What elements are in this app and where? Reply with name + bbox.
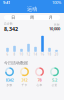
staticText: 目标 bbox=[54, 23, 60, 26]
staticText: 日 bbox=[11, 15, 15, 20]
button[interactable]: 8342 bbox=[2, 67, 17, 87]
staticText: 周 bbox=[30, 15, 34, 20]
staticText: 心率 bbox=[36, 84, 42, 87]
staticText: 今日活动数据 bbox=[4, 60, 28, 65]
staticText: 20 bbox=[54, 53, 58, 56]
staticText: 16 bbox=[40, 53, 44, 56]
staticText: 6 bbox=[6, 53, 8, 56]
staticText: 8 bbox=[13, 53, 15, 56]
button[interactable]: 312 bbox=[17, 67, 32, 87]
staticText: 8342 bbox=[5, 77, 13, 83]
staticText: 总步数 bbox=[4, 22, 13, 25]
staticText: 78 bbox=[37, 77, 41, 83]
button[interactable]: 78 bbox=[32, 67, 47, 87]
staticText: 公里 bbox=[51, 84, 57, 87]
staticText: 月 bbox=[49, 15, 53, 20]
staticText: 14 bbox=[33, 53, 37, 56]
staticText: 100% bbox=[52, 0, 61, 5]
staticText: 8,342 bbox=[4, 25, 18, 32]
button[interactable]: 5.2 bbox=[47, 67, 62, 87]
staticText: 运动 bbox=[27, 6, 37, 12]
staticText: 12 bbox=[26, 53, 30, 56]
staticText: 5.2 bbox=[52, 77, 57, 83]
staticText: 18 bbox=[47, 53, 51, 56]
staticText: 312 bbox=[21, 77, 27, 83]
button[interactable]: 周 bbox=[23, 15, 41, 20]
staticText: 步数 bbox=[6, 84, 12, 87]
button[interactable]: 月 bbox=[41, 15, 60, 20]
staticText: 千卡 bbox=[21, 84, 27, 87]
button[interactable]: 日 bbox=[4, 15, 23, 20]
staticText: 10,000 bbox=[49, 26, 60, 31]
staticText: 10 bbox=[19, 53, 23, 56]
staticText: 9:41 bbox=[3, 0, 10, 5]
